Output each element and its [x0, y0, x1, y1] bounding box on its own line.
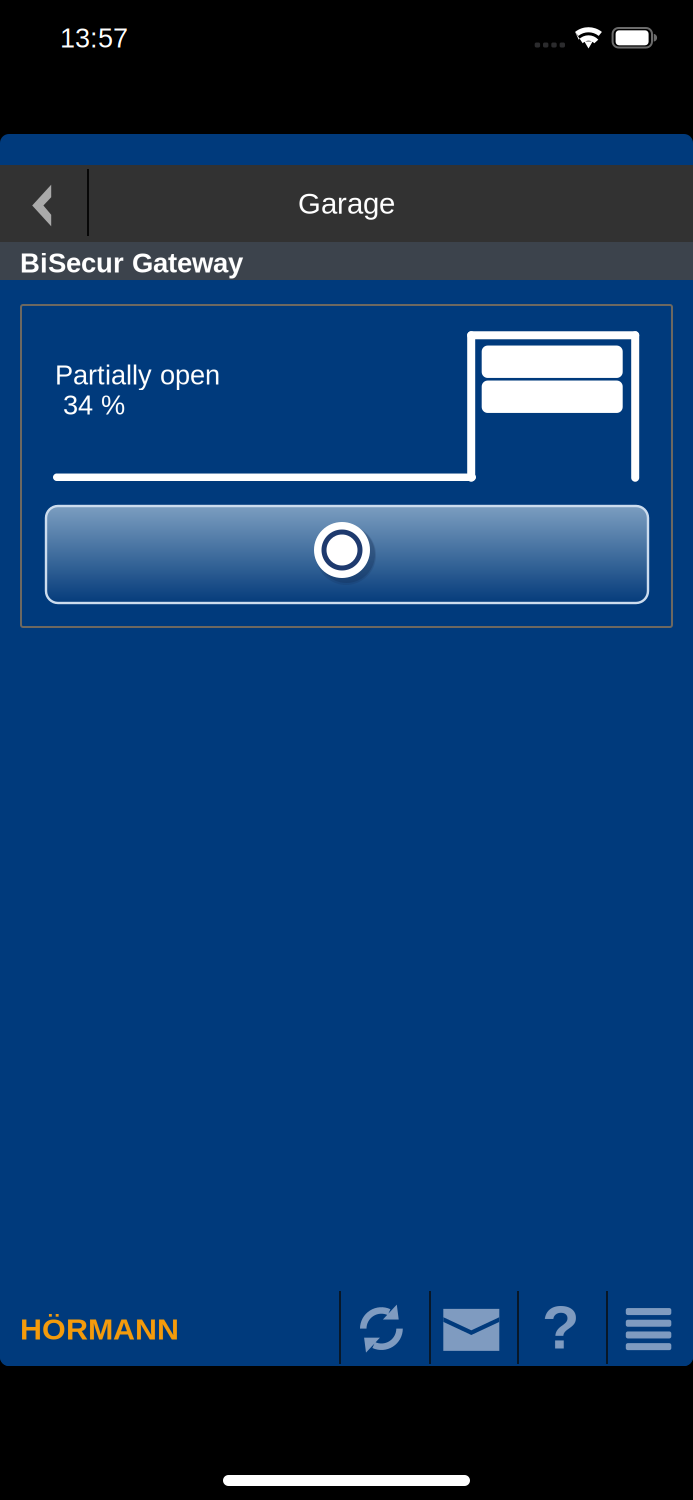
button[interactable]: Messages [429, 1288, 517, 1366]
staticText: Partially open [55, 360, 220, 390]
staticText: 13:57 [60, 23, 128, 53]
button[interactable]: Operate door [46, 506, 648, 603]
staticText: Garage [298, 187, 395, 220]
button[interactable]: Help [517, 1288, 606, 1366]
staticText: HÖRMANN [20, 1312, 179, 1346]
button[interactable]: Menu [606, 1288, 693, 1366]
staticText: 34 % [63, 390, 125, 420]
button[interactable]: Back [0, 165, 87, 242]
button[interactable]: Refresh [339, 1288, 429, 1366]
staticText: BiSecur Gateway [20, 248, 243, 278]
staticText: ? [542, 1293, 579, 1361]
